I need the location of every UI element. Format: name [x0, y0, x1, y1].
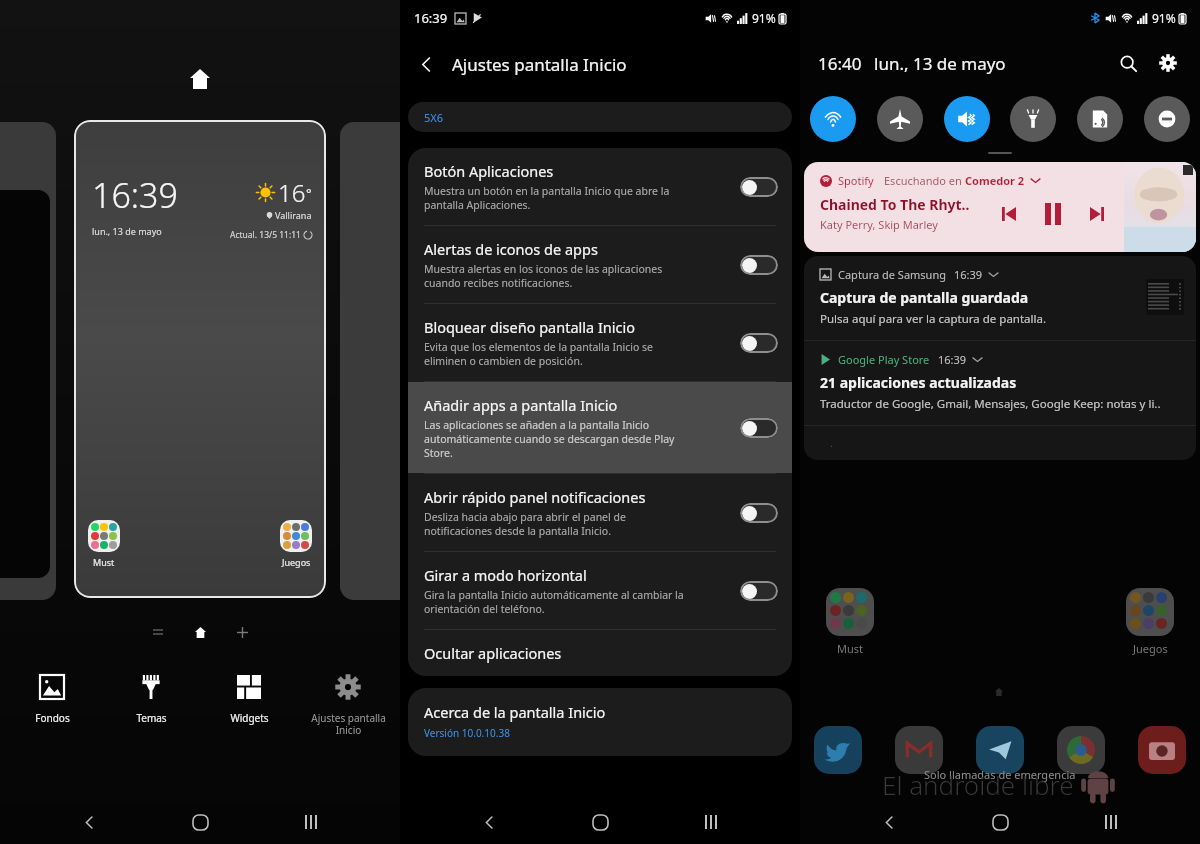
staticText: 91% — [1152, 10, 1176, 26]
staticText: Captura de pantalla guardada — [820, 288, 1029, 307]
button[interactable]: Google Play Store — [804, 341, 1196, 425]
staticText: 16:39 — [92, 172, 178, 218]
staticText: Must — [93, 556, 115, 568]
staticText: Juegos — [282, 556, 311, 568]
button[interactable]: App — [814, 726, 862, 774]
button[interactable]: Activar — [740, 581, 778, 601]
button[interactable]: Juegos — [1126, 588, 1174, 656]
button[interactable]: App — [1138, 726, 1186, 774]
button[interactable]: Atrás — [467, 800, 511, 844]
button[interactable]: Silencio — [944, 96, 990, 142]
staticText: . — [830, 436, 833, 450]
button[interactable]: 5X6 — [408, 102, 792, 132]
staticText: ° — [306, 184, 312, 202]
button[interactable]: Página Inicio — [190, 622, 210, 642]
button[interactable]: Activar — [740, 503, 778, 523]
staticText: 16:39 — [954, 267, 983, 282]
staticText: Ajustes pantalla Inicio — [452, 53, 627, 76]
button[interactable]: Pausar — [1036, 197, 1070, 231]
staticText: 16 — [278, 176, 306, 209]
button[interactable]: Acerca de la pantalla Inicio — [408, 688, 792, 756]
button[interactable]: Activar — [740, 418, 778, 438]
button[interactable]: Fondos — [6, 668, 98, 729]
staticText: Muestra un botón en la pantalla Inicio q… — [424, 184, 670, 212]
staticText: Evita que los elementos de la pantalla I… — [424, 340, 653, 368]
button[interactable]: Recientes — [689, 800, 733, 844]
button[interactable]: Activar — [740, 177, 778, 197]
button[interactable]: Añadir apps a pantalla Inicio — [408, 382, 792, 473]
staticText: 91% — [752, 10, 776, 26]
button[interactable]: Girar a modo horizontal — [408, 552, 792, 629]
button[interactable]: Abrir rápido panel notificaciones — [408, 474, 792, 551]
button[interactable]: Siguiente — [1080, 197, 1114, 231]
button[interactable]: Must — [826, 588, 874, 656]
button[interactable]: Recientes — [1089, 800, 1133, 844]
staticText: Versión 10.0.10.38 — [424, 726, 510, 740]
staticText: Acerca de la pantalla Inicio — [424, 702, 606, 722]
button[interactable]: App — [1057, 726, 1105, 774]
staticText: El androide libre — [882, 767, 1074, 802]
staticText: 5X6 — [424, 110, 444, 125]
button[interactable]: Anterior — [992, 197, 1026, 231]
button[interactable]: Botón Aplicaciones — [408, 148, 792, 225]
button[interactable]: Temas — [105, 668, 197, 729]
button[interactable]: Bloquear diseño pantalla Inicio — [408, 304, 792, 381]
staticText: Ajustes pantalla Inicio — [311, 711, 386, 737]
staticText: Ocultar aplicaciones — [424, 643, 562, 663]
button[interactable]: Linterna — [1010, 96, 1056, 142]
staticText: 16:40 — [818, 52, 862, 75]
button[interactable]: Activar — [740, 255, 778, 275]
button[interactable]: Spotify — [804, 162, 1196, 252]
button[interactable]: Must — [88, 520, 120, 568]
button[interactable]: Activar — [740, 333, 778, 353]
button[interactable]: Captura de Samsung — [804, 256, 1196, 340]
staticText: Alertas de iconos de apps — [424, 239, 598, 259]
button[interactable]: 16:39 — [74, 120, 326, 598]
staticText: Desliza hacia abajo para abrir el panel … — [424, 510, 626, 538]
button[interactable]: Pantalla Inicio — [185, 64, 215, 94]
button[interactable]: App — [976, 726, 1024, 774]
button[interactable]: Atrás — [400, 38, 452, 90]
button[interactable]: Widgets — [203, 668, 295, 729]
button[interactable]: Añadir página — [232, 622, 252, 642]
staticText: Captura de Samsung — [838, 267, 946, 282]
staticText: lun., 13 de mayo — [874, 52, 1006, 75]
button[interactable]: Ajustes pantalla Inicio — [302, 668, 394, 741]
button[interactable]: Inicio — [978, 800, 1022, 844]
button[interactable]: Juegos — [280, 520, 312, 568]
button[interactable]: Recientes — [289, 800, 333, 844]
staticText: Botón Aplicaciones — [424, 161, 554, 181]
button[interactable]: Modo avión — [877, 96, 923, 142]
button[interactable] — [0, 122, 56, 600]
staticText: Gira la pantalla Inicio automáticamente … — [424, 588, 684, 616]
button[interactable]: Inicio — [578, 800, 622, 844]
button[interactable]: Atrás — [67, 800, 111, 844]
staticText: Must — [837, 641, 864, 656]
button[interactable]: Inicio — [178, 800, 222, 844]
staticText: Widgets — [230, 711, 269, 725]
button[interactable] — [340, 122, 444, 600]
staticText: Juegos — [1133, 641, 1168, 656]
button[interactable]: Wi-Fi — [810, 96, 856, 142]
button[interactable]: Buscar — [1108, 43, 1148, 83]
staticText: lun., 13 de mayo — [92, 225, 162, 237]
staticText: Katy Perry, Skip Marley — [820, 217, 938, 232]
button[interactable]: Lista de páginas — [148, 622, 168, 642]
staticText: Comedor 2 — [965, 173, 1025, 188]
button[interactable]: No molestar — [1144, 96, 1190, 142]
button[interactable]: Compartir — [1077, 96, 1123, 142]
button[interactable]: App — [895, 726, 943, 774]
staticText: 21 aplicaciones actualizadas — [820, 373, 1017, 392]
staticText: Temas — [136, 711, 167, 725]
button[interactable]: Ocultar aplicaciones — [408, 630, 792, 676]
staticText: Google Play Store — [838, 352, 930, 367]
button[interactable]: Atrás — [867, 800, 911, 844]
button[interactable]: Alertas de iconos de apps — [408, 226, 792, 303]
staticText: Girar a modo horizontal — [424, 565, 587, 585]
staticText: Spotify — [838, 173, 874, 188]
staticText: Chained To The Rhyt.. — [820, 195, 970, 214]
staticText: Bloquear diseño pantalla Inicio — [424, 317, 636, 337]
button[interactable]: Ajustes — [1148, 43, 1188, 83]
staticText: Pulsa aquí para ver la captura de pantal… — [820, 311, 1047, 327]
